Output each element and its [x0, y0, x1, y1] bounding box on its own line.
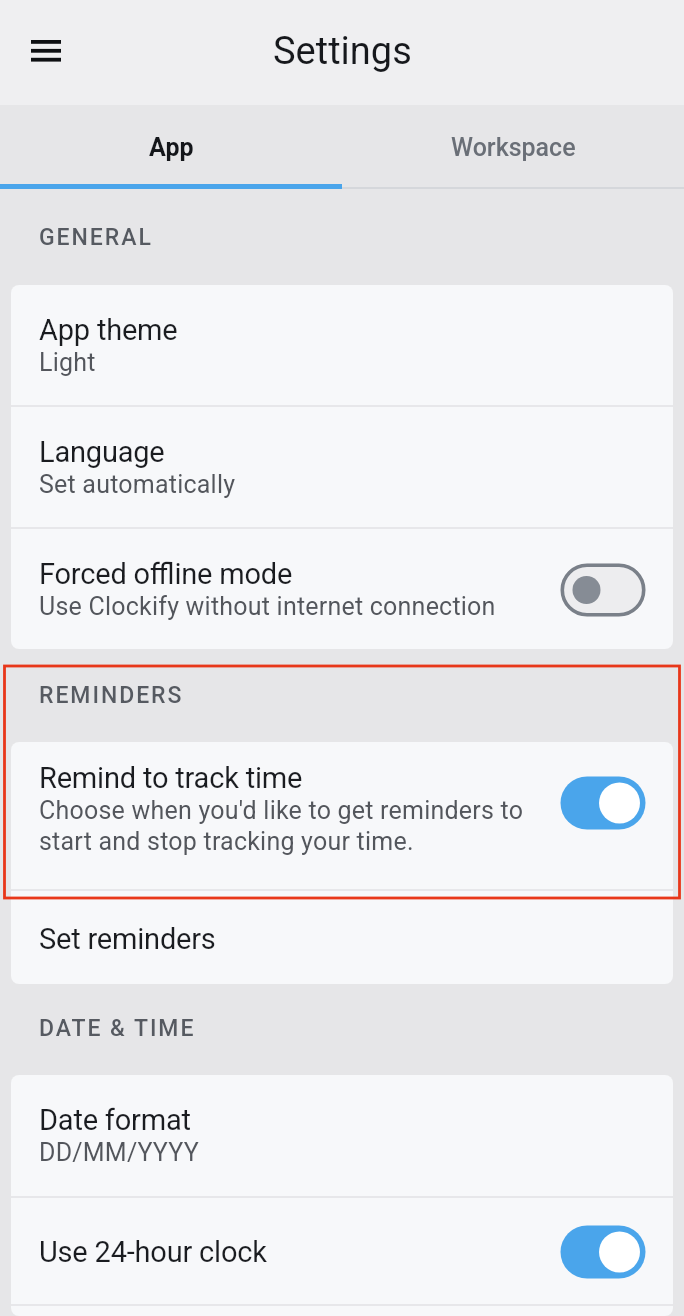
staticText: GENERAL: [39, 224, 153, 251]
button[interactable]: Switch, off: [560, 563, 646, 617]
button[interactable]: App: [0, 105, 342, 189]
button[interactable]: Date format: [11, 1075, 673, 1196]
button[interactable]: Remind to track time: [11, 742, 673, 889]
button[interactable]: App theme: [11, 285, 673, 405]
staticText: Settings: [273, 29, 412, 74]
staticText: App theme: [39, 313, 178, 347]
staticText: Date format: [39, 1103, 191, 1137]
staticText: Workspace: [451, 133, 576, 162]
button[interactable]: Workspace: [342, 105, 684, 189]
button[interactable]: Open navigation menu: [17, 24, 75, 82]
staticText: Use Clockify without internet connection: [39, 591, 496, 622]
button[interactable]: Language: [11, 407, 673, 527]
staticText: Language: [39, 435, 165, 469]
staticText: Forced offline mode: [39, 557, 293, 591]
staticText: DATE & TIME: [39, 1015, 196, 1042]
staticText: REMINDERS: [39, 682, 184, 709]
button[interactable]: Use 24-hour clock: [11, 1198, 673, 1304]
staticText: Use 24-hour clock: [39, 1235, 267, 1269]
staticText: DD/MM/YYYY: [39, 1137, 200, 1168]
staticText: Light: [39, 347, 96, 378]
staticText: Set reminders: [39, 922, 216, 956]
button[interactable]: Forced offline mode: [11, 529, 673, 649]
staticText: Remind to track time: [39, 761, 303, 795]
staticText: Choose when you'd like to get reminders …: [39, 795, 538, 857]
button[interactable]: Switch, on: [560, 776, 646, 830]
staticText: App: [149, 133, 194, 162]
button[interactable]: Set reminders: [11, 891, 673, 984]
button[interactable]: Switch, on: [560, 1225, 646, 1279]
staticText: Set automatically: [39, 469, 236, 500]
